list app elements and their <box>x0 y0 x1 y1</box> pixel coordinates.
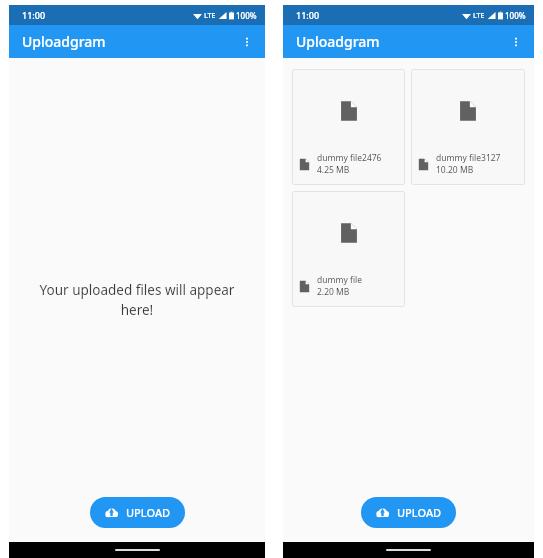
staticText: 100% <box>505 10 526 21</box>
staticText: Uploadgram <box>296 32 380 51</box>
staticText: 11:00 <box>296 9 320 21</box>
staticText: LTE <box>204 11 216 21</box>
staticText: 4.25 MB <box>317 164 350 176</box>
button[interactable]: UPLOAD <box>361 497 456 528</box>
staticText: UPLOAD <box>397 505 442 520</box>
button[interactable]: UPLOAD <box>90 497 185 528</box>
staticText: Your uploaded files will appear here! <box>31 281 243 319</box>
staticText: UPLOAD <box>126 505 171 520</box>
staticText: Uploadgram <box>22 32 106 51</box>
button[interactable]: dummy file2476 <box>292 69 405 185</box>
staticText: dummy file3127 <box>436 152 501 164</box>
staticText: LTE <box>473 11 485 21</box>
button[interactable]: More options <box>502 28 530 56</box>
staticText: dummy file <box>317 274 363 286</box>
staticText: 10.20 MB <box>436 164 474 176</box>
staticText: dummy file2476 <box>317 152 382 164</box>
button[interactable]: dummy file3127 <box>411 69 525 185</box>
staticText: 2.20 MB <box>317 286 350 298</box>
button[interactable]: dummy file <box>292 191 405 307</box>
staticText: 11:00 <box>22 9 46 21</box>
staticText: 100% <box>236 10 257 21</box>
button[interactable]: More options <box>233 28 261 56</box>
